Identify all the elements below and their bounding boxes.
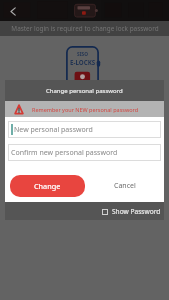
staticText: SISO <box>77 51 88 58</box>
staticText: New personal password <box>14 125 93 135</box>
staticText: Cancel <box>114 181 136 191</box>
staticText: E-LOCKS <box>70 58 96 66</box>
button[interactable]: Change <box>10 175 85 197</box>
button[interactable]: Show Password <box>98 205 164 218</box>
staticText: Change personal password <box>46 87 123 95</box>
button[interactable]: Cancel <box>85 175 164 197</box>
staticText: Master login is required to change lock … <box>11 24 159 33</box>
staticText: Show Password <box>112 207 161 216</box>
staticText: Change <box>34 181 61 191</box>
staticText: Remember your NEW personal password <box>32 106 139 113</box>
button[interactable]: Back <box>4 3 20 19</box>
staticText: Confirm new personal password <box>11 148 118 158</box>
